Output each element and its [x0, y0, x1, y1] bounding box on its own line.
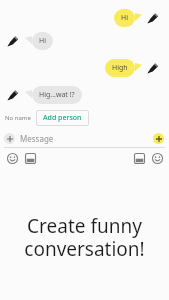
button[interactable]: Emoji [3, 149, 21, 167]
button[interactable]: Attach image [21, 149, 39, 167]
button[interactable]: Edit message [144, 58, 163, 77]
button[interactable]: Stickers [148, 149, 166, 167]
button[interactable]: Edit message [4, 31, 23, 50]
button[interactable]: Add message [4, 133, 15, 144]
button[interactable]: Add [153, 133, 164, 144]
button[interactable]: Edit message [4, 85, 23, 104]
button[interactable]: Gallery [130, 149, 148, 167]
staticText: Hi [39, 36, 46, 46]
staticText: No name [5, 114, 31, 122]
button[interactable]: Add person [36, 110, 89, 126]
staticText: Create funny conversation! [0, 213, 169, 262]
staticText: Hi [121, 13, 128, 23]
staticText: Add person [43, 113, 82, 123]
staticText: Message [20, 133, 54, 144]
staticText: Hig...wat !? [39, 90, 75, 100]
staticText: High [112, 63, 128, 73]
button[interactable]: Edit message [144, 8, 163, 27]
